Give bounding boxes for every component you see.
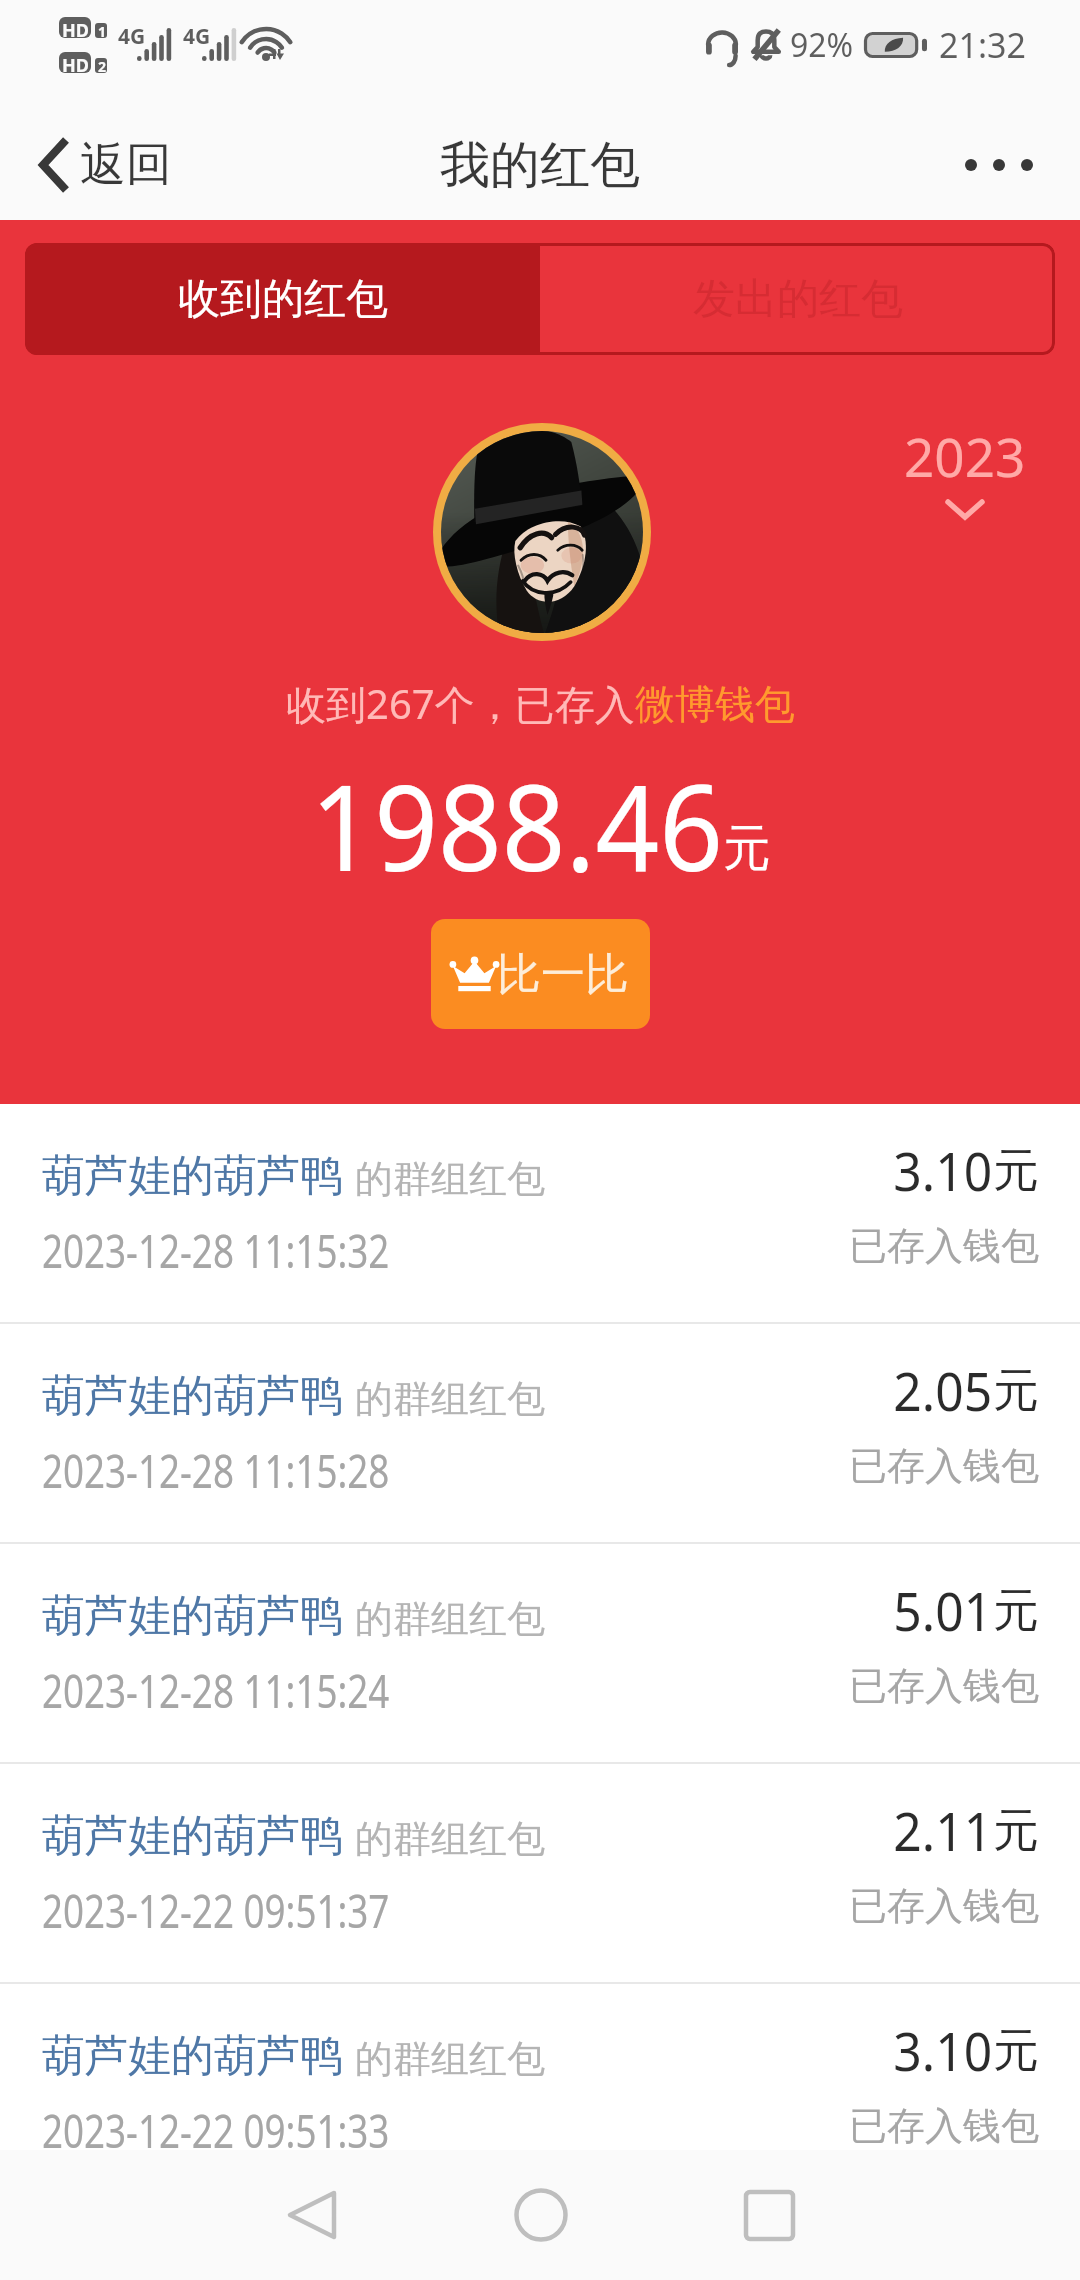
button[interactable]: 发出的红包 xyxy=(540,243,1055,355)
staticText: 葫芦娃的葫芦鸭 xyxy=(42,1809,343,1863)
button[interactable]: 返回 xyxy=(0,110,212,220)
button[interactable]: 葫芦娃的葫芦鸭 xyxy=(0,1324,1080,1542)
staticText: 微博钱包 xyxy=(635,679,795,729)
staticText: 已存入钱包 xyxy=(849,1222,1039,1270)
button[interactable]: Back xyxy=(197,2150,426,2280)
staticText: 2 xyxy=(98,57,107,76)
button[interactable]: 葫芦娃的葫芦鸭 xyxy=(0,1544,1080,1762)
button[interactable]: 比一比 xyxy=(431,919,650,1029)
button[interactable]: 葫芦娃的葫芦鸭 xyxy=(0,1764,1080,1982)
staticText: 的群组红包 xyxy=(355,1155,545,1203)
staticText: 2023 xyxy=(904,420,1026,492)
staticText: 元 xyxy=(723,817,771,880)
staticText: 葫芦娃的葫芦鸭 xyxy=(42,1369,343,1423)
staticText: 92% xyxy=(790,23,854,67)
button[interactable]: 收到的红包 xyxy=(25,243,540,355)
staticText: 葫芦娃的葫芦鸭 xyxy=(42,1149,343,1203)
staticText: 已存入钱包 xyxy=(849,1442,1039,1490)
staticText: 已存入钱包 xyxy=(849,1662,1039,1710)
button[interactable]: Profile avatar xyxy=(441,431,643,633)
staticText: 3.10 xyxy=(893,1134,993,1206)
staticText: 发出的红包 xyxy=(693,273,903,326)
staticText: 4G xyxy=(118,22,146,51)
staticText: 2023-12-28 11:15:28 xyxy=(42,1440,390,1501)
staticText: 收到的红包 xyxy=(178,273,388,326)
staticText: 2.05 xyxy=(893,1354,993,1426)
staticText: 葫芦娃的葫芦鸭 xyxy=(42,2029,343,2083)
staticText: HD xyxy=(62,18,89,43)
staticText: 已存入钱包 xyxy=(849,2102,1039,2150)
staticText: 的群组红包 xyxy=(355,1375,545,1423)
staticText: 返回 xyxy=(80,136,172,194)
staticText: 的群组红包 xyxy=(355,1815,545,1863)
staticText: 元 xyxy=(993,1582,1039,1640)
staticText: 4G xyxy=(183,22,211,51)
button[interactable]: 2023 xyxy=(890,410,1040,531)
staticText: 我的红包 xyxy=(440,134,640,197)
button[interactable]: 葫芦娃的葫芦鸭 xyxy=(0,1984,1080,2202)
staticText: 的群组红包 xyxy=(355,1595,545,1643)
staticText: 1 xyxy=(98,22,107,41)
staticText: HD xyxy=(62,53,89,78)
staticText: 2023-12-22 09:51:33 xyxy=(42,2100,390,2161)
staticText: 1988.46 xyxy=(310,745,723,906)
staticText: 收到267个，已存入 xyxy=(286,676,635,731)
button[interactable]: 葫芦娃的葫芦鸭 xyxy=(0,1104,1080,1322)
staticText: 元 xyxy=(993,1802,1039,1860)
staticText: 葫芦娃的葫芦鸭 xyxy=(42,1589,343,1643)
staticText: 元 xyxy=(993,1362,1039,1420)
staticText: 已存入钱包 xyxy=(849,1882,1039,1930)
staticText: 元 xyxy=(993,1142,1039,1200)
staticText: 比一比 xyxy=(497,947,629,1002)
staticText: 2.11 xyxy=(893,1794,993,1866)
staticText: 21:32 xyxy=(939,22,1026,68)
staticText: 3.10 xyxy=(893,2014,993,2086)
button[interactable]: Recent apps xyxy=(655,2150,884,2280)
staticText: 的群组红包 xyxy=(355,2035,545,2083)
staticText: 2023-12-28 11:15:32 xyxy=(42,1220,390,1281)
button[interactable]: More options xyxy=(925,110,1080,220)
staticText: 元 xyxy=(993,2022,1039,2080)
staticText: 5.01 xyxy=(893,1574,993,1646)
staticText: 2023-12-22 09:51:37 xyxy=(42,1880,390,1941)
staticText: 2023-12-28 11:15:24 xyxy=(42,1660,390,1721)
button[interactable]: Home xyxy=(426,2150,655,2280)
